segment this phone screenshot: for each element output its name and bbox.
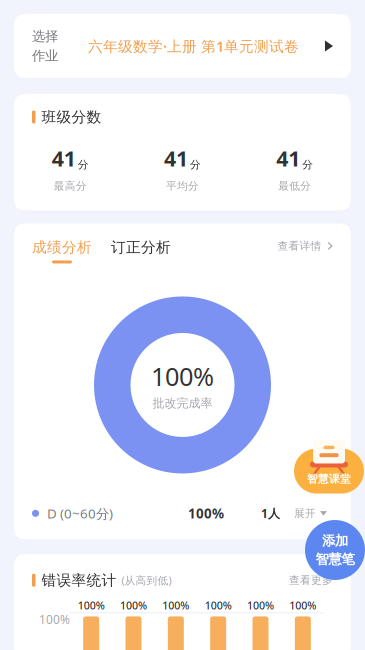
staticText: 六年级数学·上册 第1单元测试卷 [88, 36, 299, 56]
staticText: 100% [247, 598, 274, 612]
staticText: 100% [78, 598, 105, 612]
staticText: 作业 [32, 47, 58, 64]
button[interactable]: 订正分析 [92, 238, 171, 256]
staticText: 平均分 [166, 179, 199, 192]
staticText: 100% [120, 598, 147, 612]
staticText: 订正分析 [111, 238, 171, 256]
staticText: 100% [162, 598, 189, 612]
staticText: 查看详情 [277, 239, 321, 252]
staticText: 最高分 [54, 179, 87, 192]
button[interactable]: 智慧课堂 [294, 437, 364, 498]
staticText: 批改完成率 [152, 396, 212, 411]
button[interactable]: 展开 [280, 507, 327, 520]
staticText: 班级分数 [41, 108, 101, 126]
staticText: 选择 [32, 28, 58, 44]
staticText: 智慧笔 [315, 551, 354, 567]
staticText: 41 [52, 144, 76, 172]
staticText: 1人 [261, 505, 280, 521]
button[interactable]: 查看更多 [289, 574, 333, 587]
staticText: 成绩分析 [32, 238, 92, 256]
staticText: 100% [289, 598, 316, 612]
staticText: 100% [151, 359, 214, 393]
button[interactable]: 选择 [14, 14, 351, 78]
staticText: 100% [188, 504, 224, 522]
staticText: 分 [190, 158, 201, 171]
staticText: 41 [276, 144, 300, 172]
staticText: 100% [205, 598, 232, 612]
staticText: 错误率统计 [41, 571, 116, 589]
staticText: (从高到低) [121, 573, 171, 587]
staticText: 分 [78, 158, 89, 171]
staticText: D (0~60分) [47, 504, 113, 522]
button[interactable]: 添加 [305, 520, 365, 580]
staticText: 添加 [322, 533, 348, 549]
staticText: 100% [39, 611, 70, 627]
staticText: 智慧课堂 [307, 472, 351, 485]
staticText: 查看更多 [289, 574, 333, 587]
button[interactable]: 查看详情 [277, 238, 333, 252]
button[interactable]: 成绩分析 [32, 238, 92, 263]
staticText: 41 [164, 144, 188, 172]
staticText: 最低分 [278, 179, 311, 192]
staticText: 分 [302, 158, 313, 171]
staticText: 展开 [294, 507, 316, 520]
